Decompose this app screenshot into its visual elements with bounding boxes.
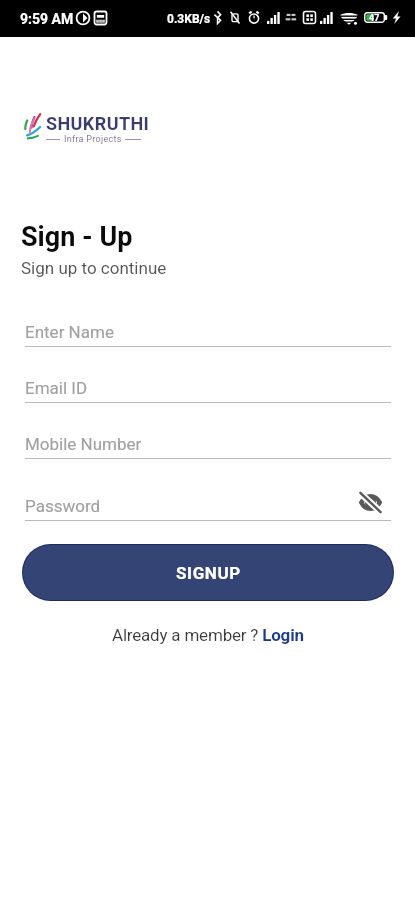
staticText: SHUKRUTHI <box>46 113 150 134</box>
button[interactable]: Toggle password visibility <box>354 488 386 516</box>
staticText: Sign up to continue <box>21 258 167 278</box>
staticText: Infra Projects <box>64 134 122 145</box>
staticText: Already a member ? Login <box>112 625 304 645</box>
button[interactable]: Already a member ? Login <box>112 625 304 645</box>
staticText: Sign - Up <box>21 221 133 253</box>
staticText: 0.3KB/s <box>167 12 211 26</box>
staticText: Password <box>25 496 101 516</box>
button[interactable]: Email ID <box>25 369 391 403</box>
staticText: Email ID <box>25 378 88 398</box>
button[interactable]: Mobile Number <box>25 425 391 459</box>
button[interactable]: Password <box>25 487 391 521</box>
staticText: 9:59 AM <box>20 11 74 27</box>
staticText: Enter Name <box>25 322 114 342</box>
button[interactable]: Enter Name <box>25 313 391 347</box>
staticText: Mobile Number <box>25 434 142 454</box>
staticText: 47 <box>369 13 380 24</box>
button[interactable]: SIGNUP <box>23 545 393 600</box>
staticText: SIGNUP <box>176 563 241 583</box>
